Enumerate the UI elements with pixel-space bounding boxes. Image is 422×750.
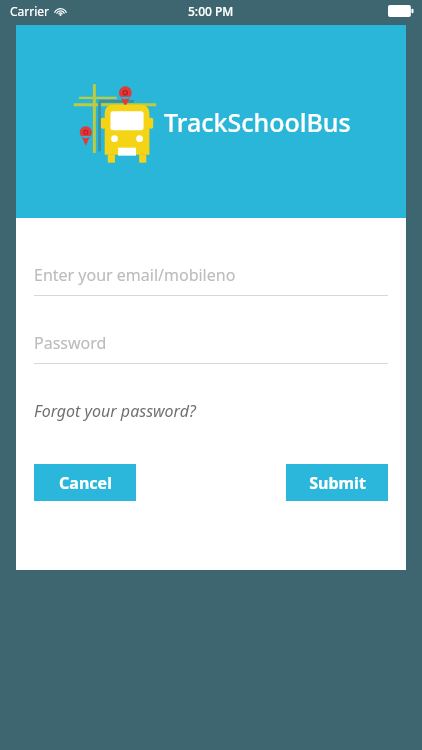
button[interactable]: Submit [286,464,388,501]
staticText: Forgot your password? [34,400,196,422]
button[interactable]: Forgot your password? [34,396,196,426]
button[interactable]: Cancel [34,464,136,501]
button[interactable]: Password [34,332,388,364]
button[interactable]: Enter your email/mobileno [34,264,388,296]
staticText: Carrier [10,3,50,19]
staticText: 5:00 PM [188,3,234,19]
staticText: Enter your email/mobileno [34,264,236,286]
staticText: Cancel [59,472,112,494]
staticText: TrackSchoolBus [164,105,351,139]
staticText: Password [34,332,107,354]
staticText: Submit [309,472,366,494]
